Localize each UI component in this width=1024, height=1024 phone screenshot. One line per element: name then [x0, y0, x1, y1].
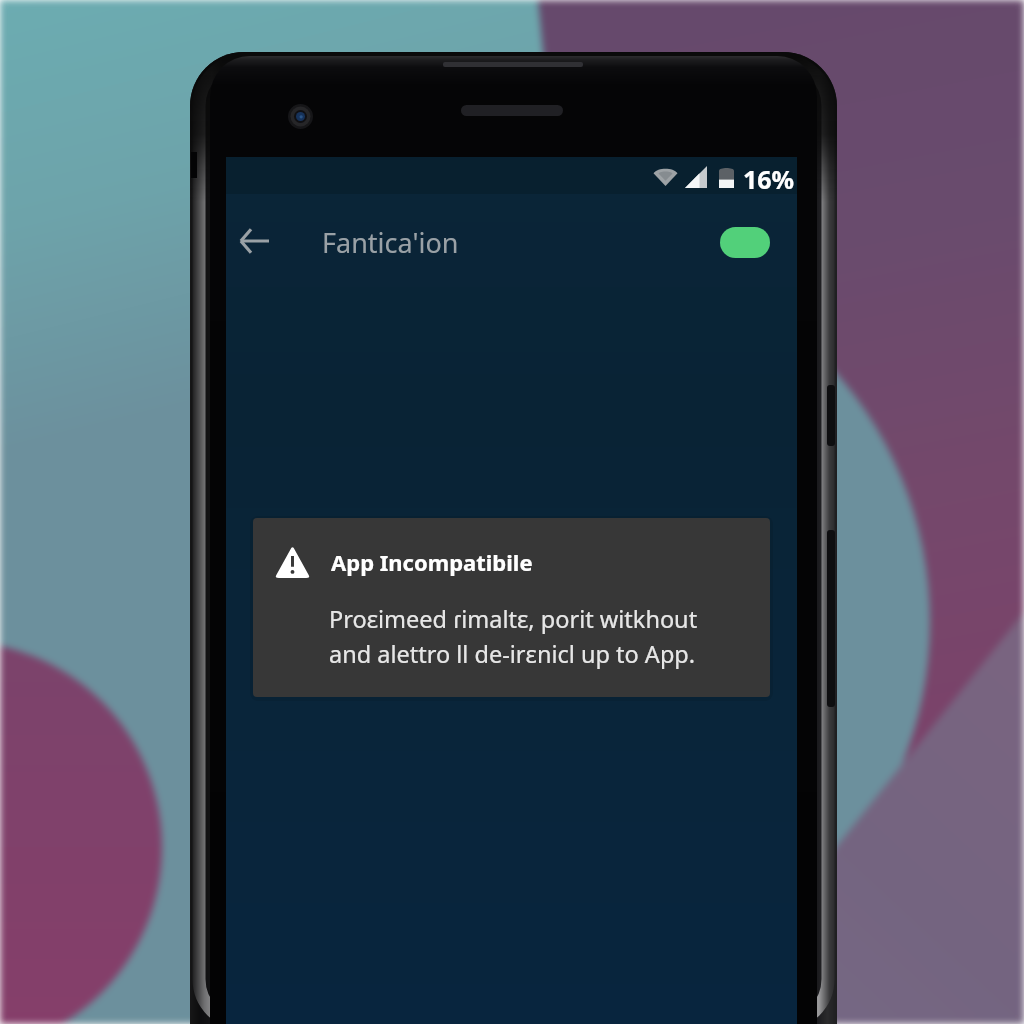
staticText: Fantica'ion [322, 224, 459, 261]
staticText: 16% [743, 162, 795, 196]
button[interactable]: Enable notifications [720, 227, 770, 258]
button[interactable]: Back [230, 217, 278, 265]
button[interactable]: App Incompatibile [253, 518, 770, 697]
staticText: Proɛimeed ɾimaltɛ, porit witkhout and al… [329, 603, 698, 670]
staticText: App Incompatibile [331, 547, 533, 577]
